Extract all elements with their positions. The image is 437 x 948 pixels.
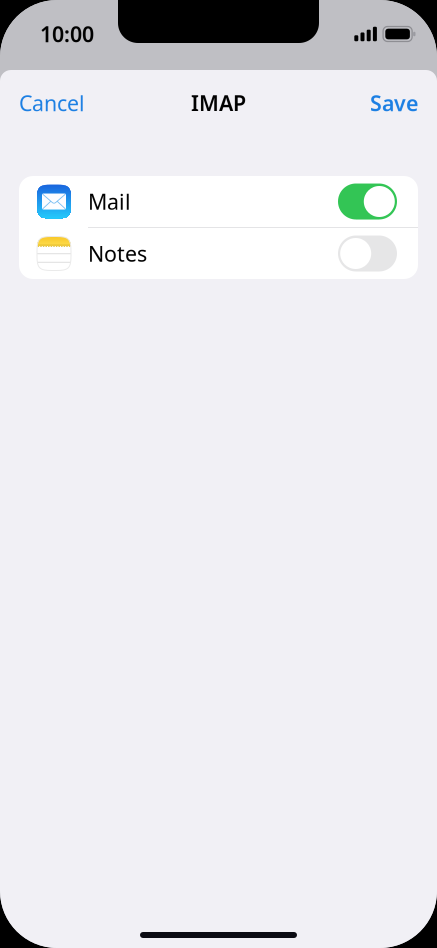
staticText: Mail (88, 187, 131, 216)
button[interactable]: Mail (19, 176, 418, 227)
button[interactable]: Save (370, 89, 418, 117)
staticText: IMAP (191, 89, 246, 117)
button[interactable]: Notes (19, 228, 418, 279)
staticText: Cancel (19, 89, 85, 117)
staticText: 10:00 (40, 20, 94, 48)
button[interactable]: Cancel (19, 89, 85, 117)
staticText: Save (370, 89, 418, 117)
staticText: Notes (88, 239, 147, 268)
